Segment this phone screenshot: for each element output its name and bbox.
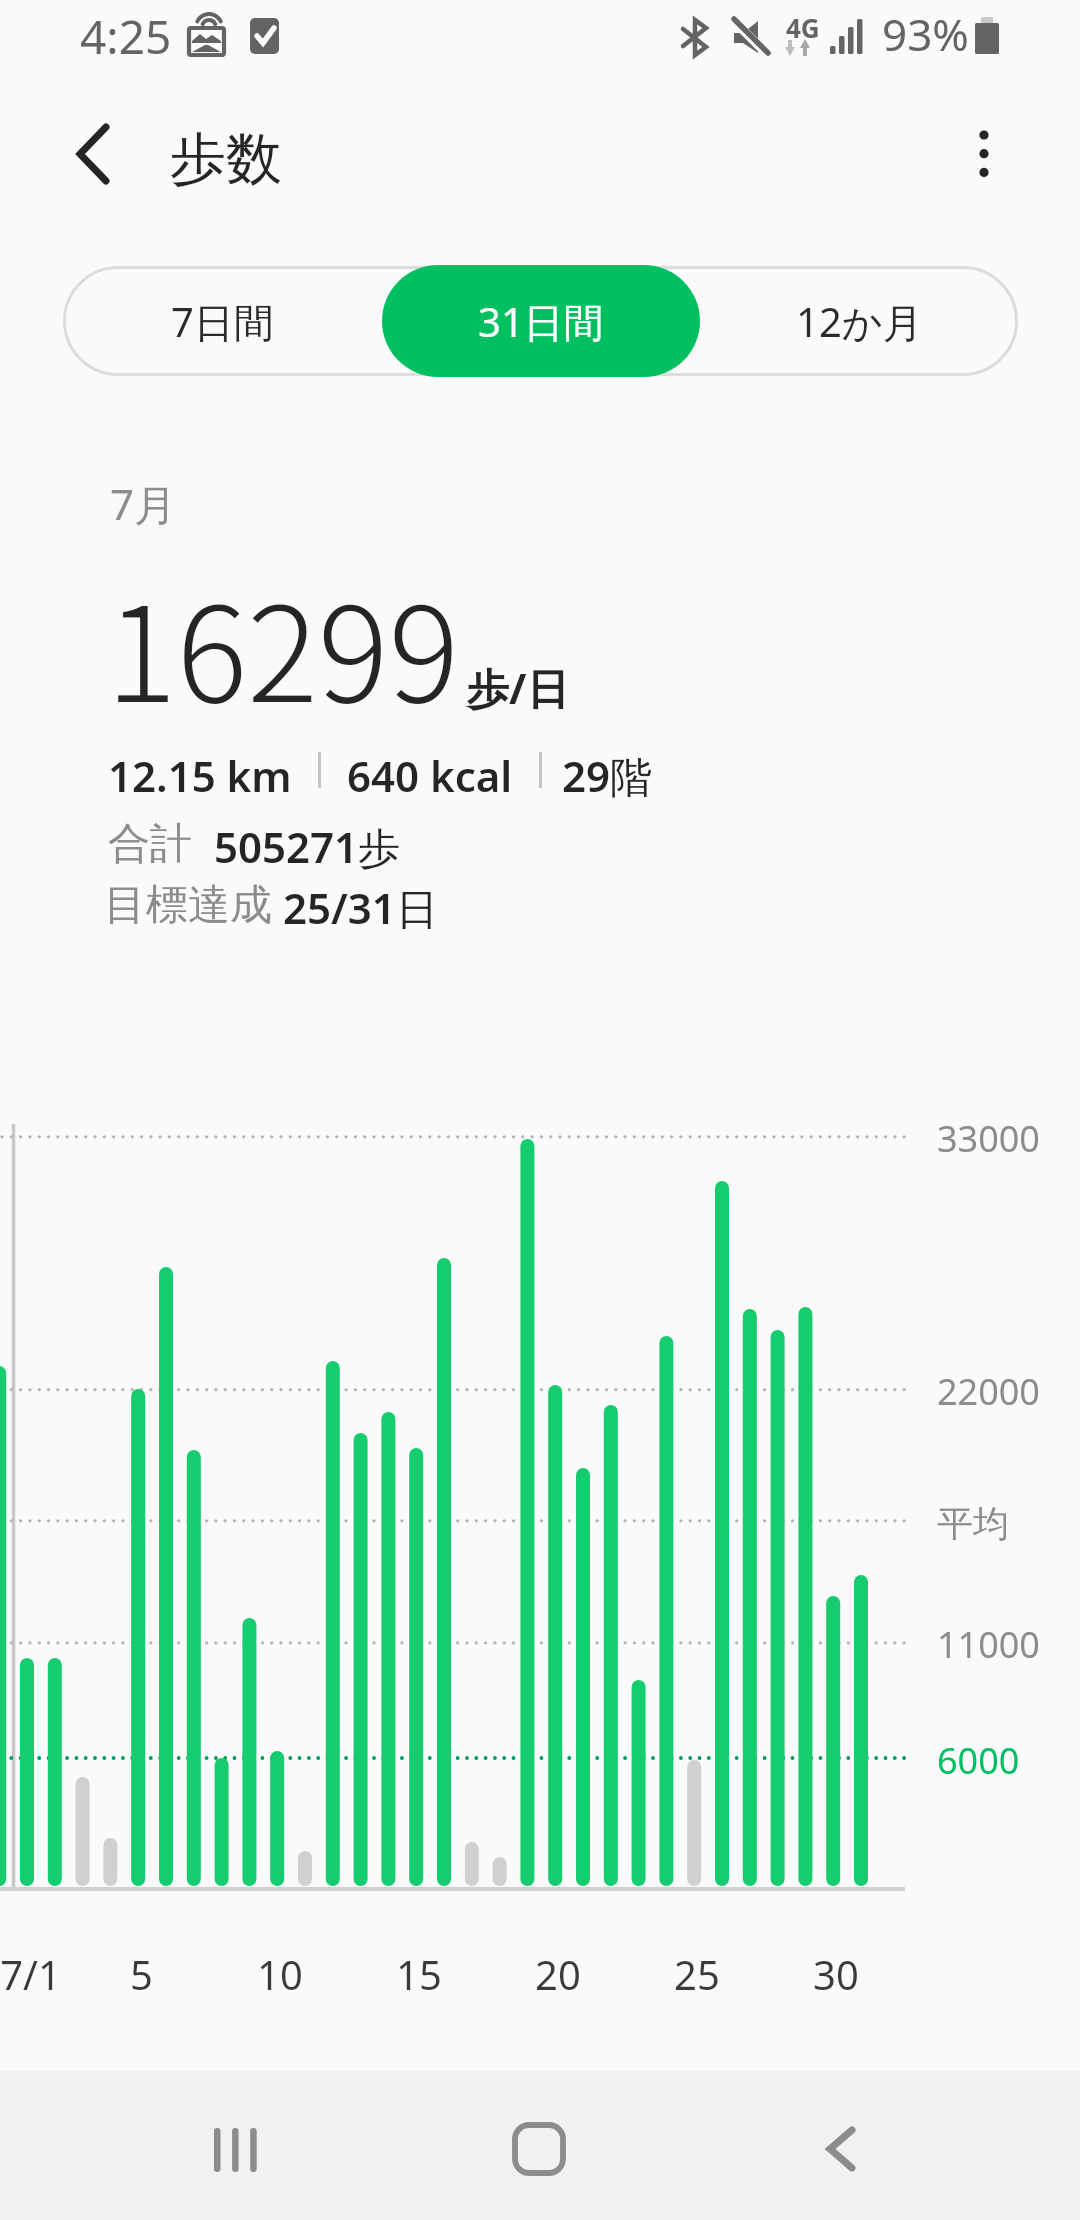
staticText: 12か月 <box>796 294 923 349</box>
staticText: 6000 <box>937 1736 1020 1785</box>
staticText: 10 <box>257 1947 303 2001</box>
staticText: 29階 <box>562 747 653 804</box>
staticText: 25 <box>674 1947 720 2001</box>
staticText: 30 <box>813 1947 859 2001</box>
button[interactable]: 31日間 <box>382 265 700 377</box>
staticText: 7日間 <box>171 294 274 349</box>
staticText: 11000 <box>937 1620 1040 1669</box>
staticText: 640 kcal <box>347 747 513 804</box>
staticText: 4:25 <box>80 5 172 68</box>
staticText: 歩数 <box>170 124 282 195</box>
staticText: 15 <box>396 1947 442 2001</box>
staticText: 505271歩 <box>214 818 401 875</box>
button[interactable]: 12か月 <box>700 265 1018 377</box>
staticText: 7月 <box>110 475 177 532</box>
staticText: 12.15 km <box>108 747 292 804</box>
staticText: 33000 <box>937 1114 1040 1163</box>
staticText: 31日間 <box>478 294 604 349</box>
button[interactable]: Home <box>464 2101 614 2197</box>
button[interactable]: Back <box>766 2102 916 2198</box>
staticText: 歩/日 <box>467 659 569 716</box>
staticText: 5 <box>130 1947 153 2001</box>
button[interactable]: Recent apps <box>162 2102 312 2198</box>
staticText: 7/1 <box>0 1947 61 2001</box>
staticText: 合計 <box>108 818 192 871</box>
staticText: 平均 <box>937 1501 1009 1546</box>
staticText: 25/31日 <box>272 879 438 936</box>
staticText: 93% <box>882 4 969 64</box>
staticText: 16299 <box>106 549 460 740</box>
staticText: 目標達成 <box>104 879 272 932</box>
button[interactable]: Back <box>42 96 152 216</box>
staticText: 22000 <box>937 1367 1040 1416</box>
button[interactable]: 7日間 <box>63 265 382 377</box>
button[interactable]: More options <box>938 96 1030 216</box>
staticText: 4G <box>786 10 820 45</box>
staticText: 20 <box>535 1947 581 2001</box>
